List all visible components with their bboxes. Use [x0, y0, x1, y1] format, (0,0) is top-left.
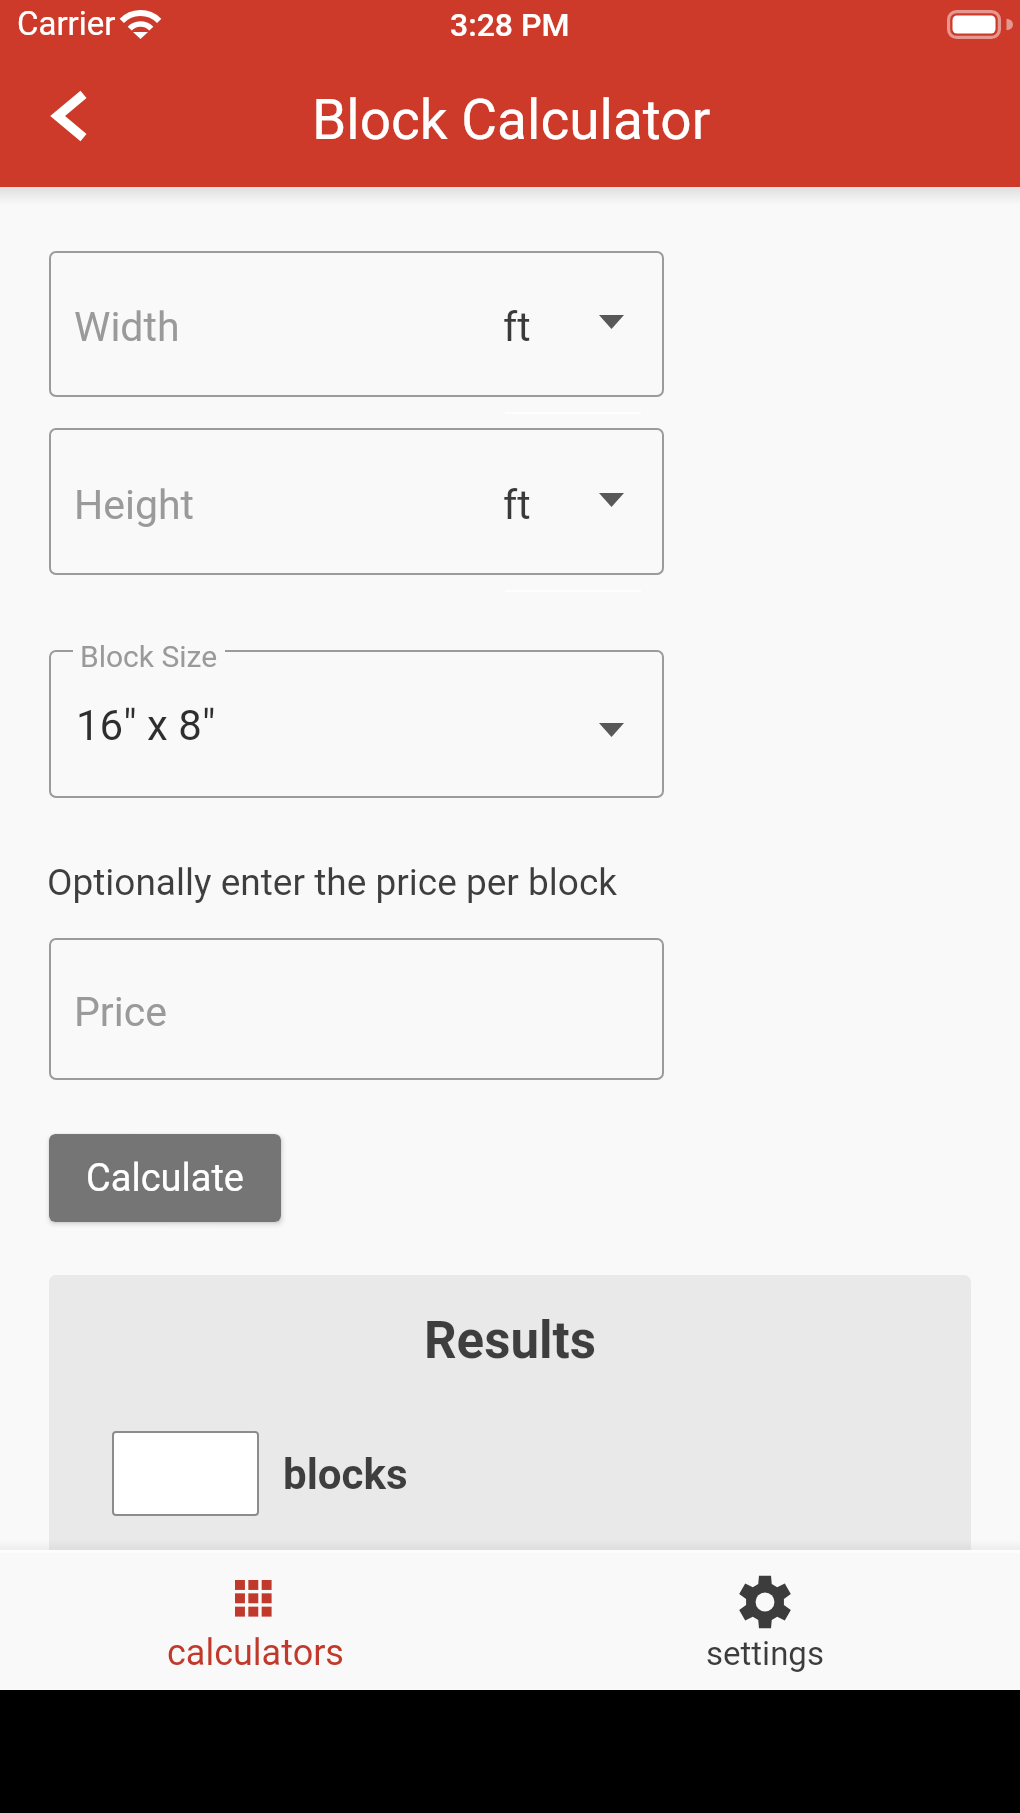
staticText: calculators — [167, 1632, 344, 1674]
button[interactable]: Price — [49, 938, 664, 1080]
button[interactable]: Calculate — [49, 1134, 281, 1222]
staticText: Height — [74, 481, 194, 529]
staticText: Width — [74, 303, 180, 351]
staticText: Optionally enter the price per block — [47, 861, 618, 904]
button[interactable]: settings — [510, 1550, 1020, 1690]
button[interactable]: Height — [49, 428, 664, 575]
staticText: ft — [503, 303, 531, 351]
staticText: settings — [706, 1634, 824, 1673]
staticText: Block Size — [80, 639, 218, 674]
button[interactable]: calculators — [0, 1550, 510, 1690]
staticText: 16" x 8" — [76, 701, 216, 750]
button[interactable] — [49, 650, 664, 798]
staticText: Results — [49, 1311, 971, 1371]
button[interactable]: Back — [33, 79, 107, 153]
staticText: 3:28 PM — [450, 6, 570, 44]
staticText: Price — [74, 988, 167, 1036]
staticText: Block Calculator — [312, 88, 711, 152]
button[interactable]: Width — [49, 251, 664, 397]
staticText: Carrier — [17, 4, 116, 43]
staticText: Calculate — [86, 1156, 244, 1201]
staticText: ft — [503, 481, 531, 529]
staticText: blocks — [283, 1450, 408, 1499]
